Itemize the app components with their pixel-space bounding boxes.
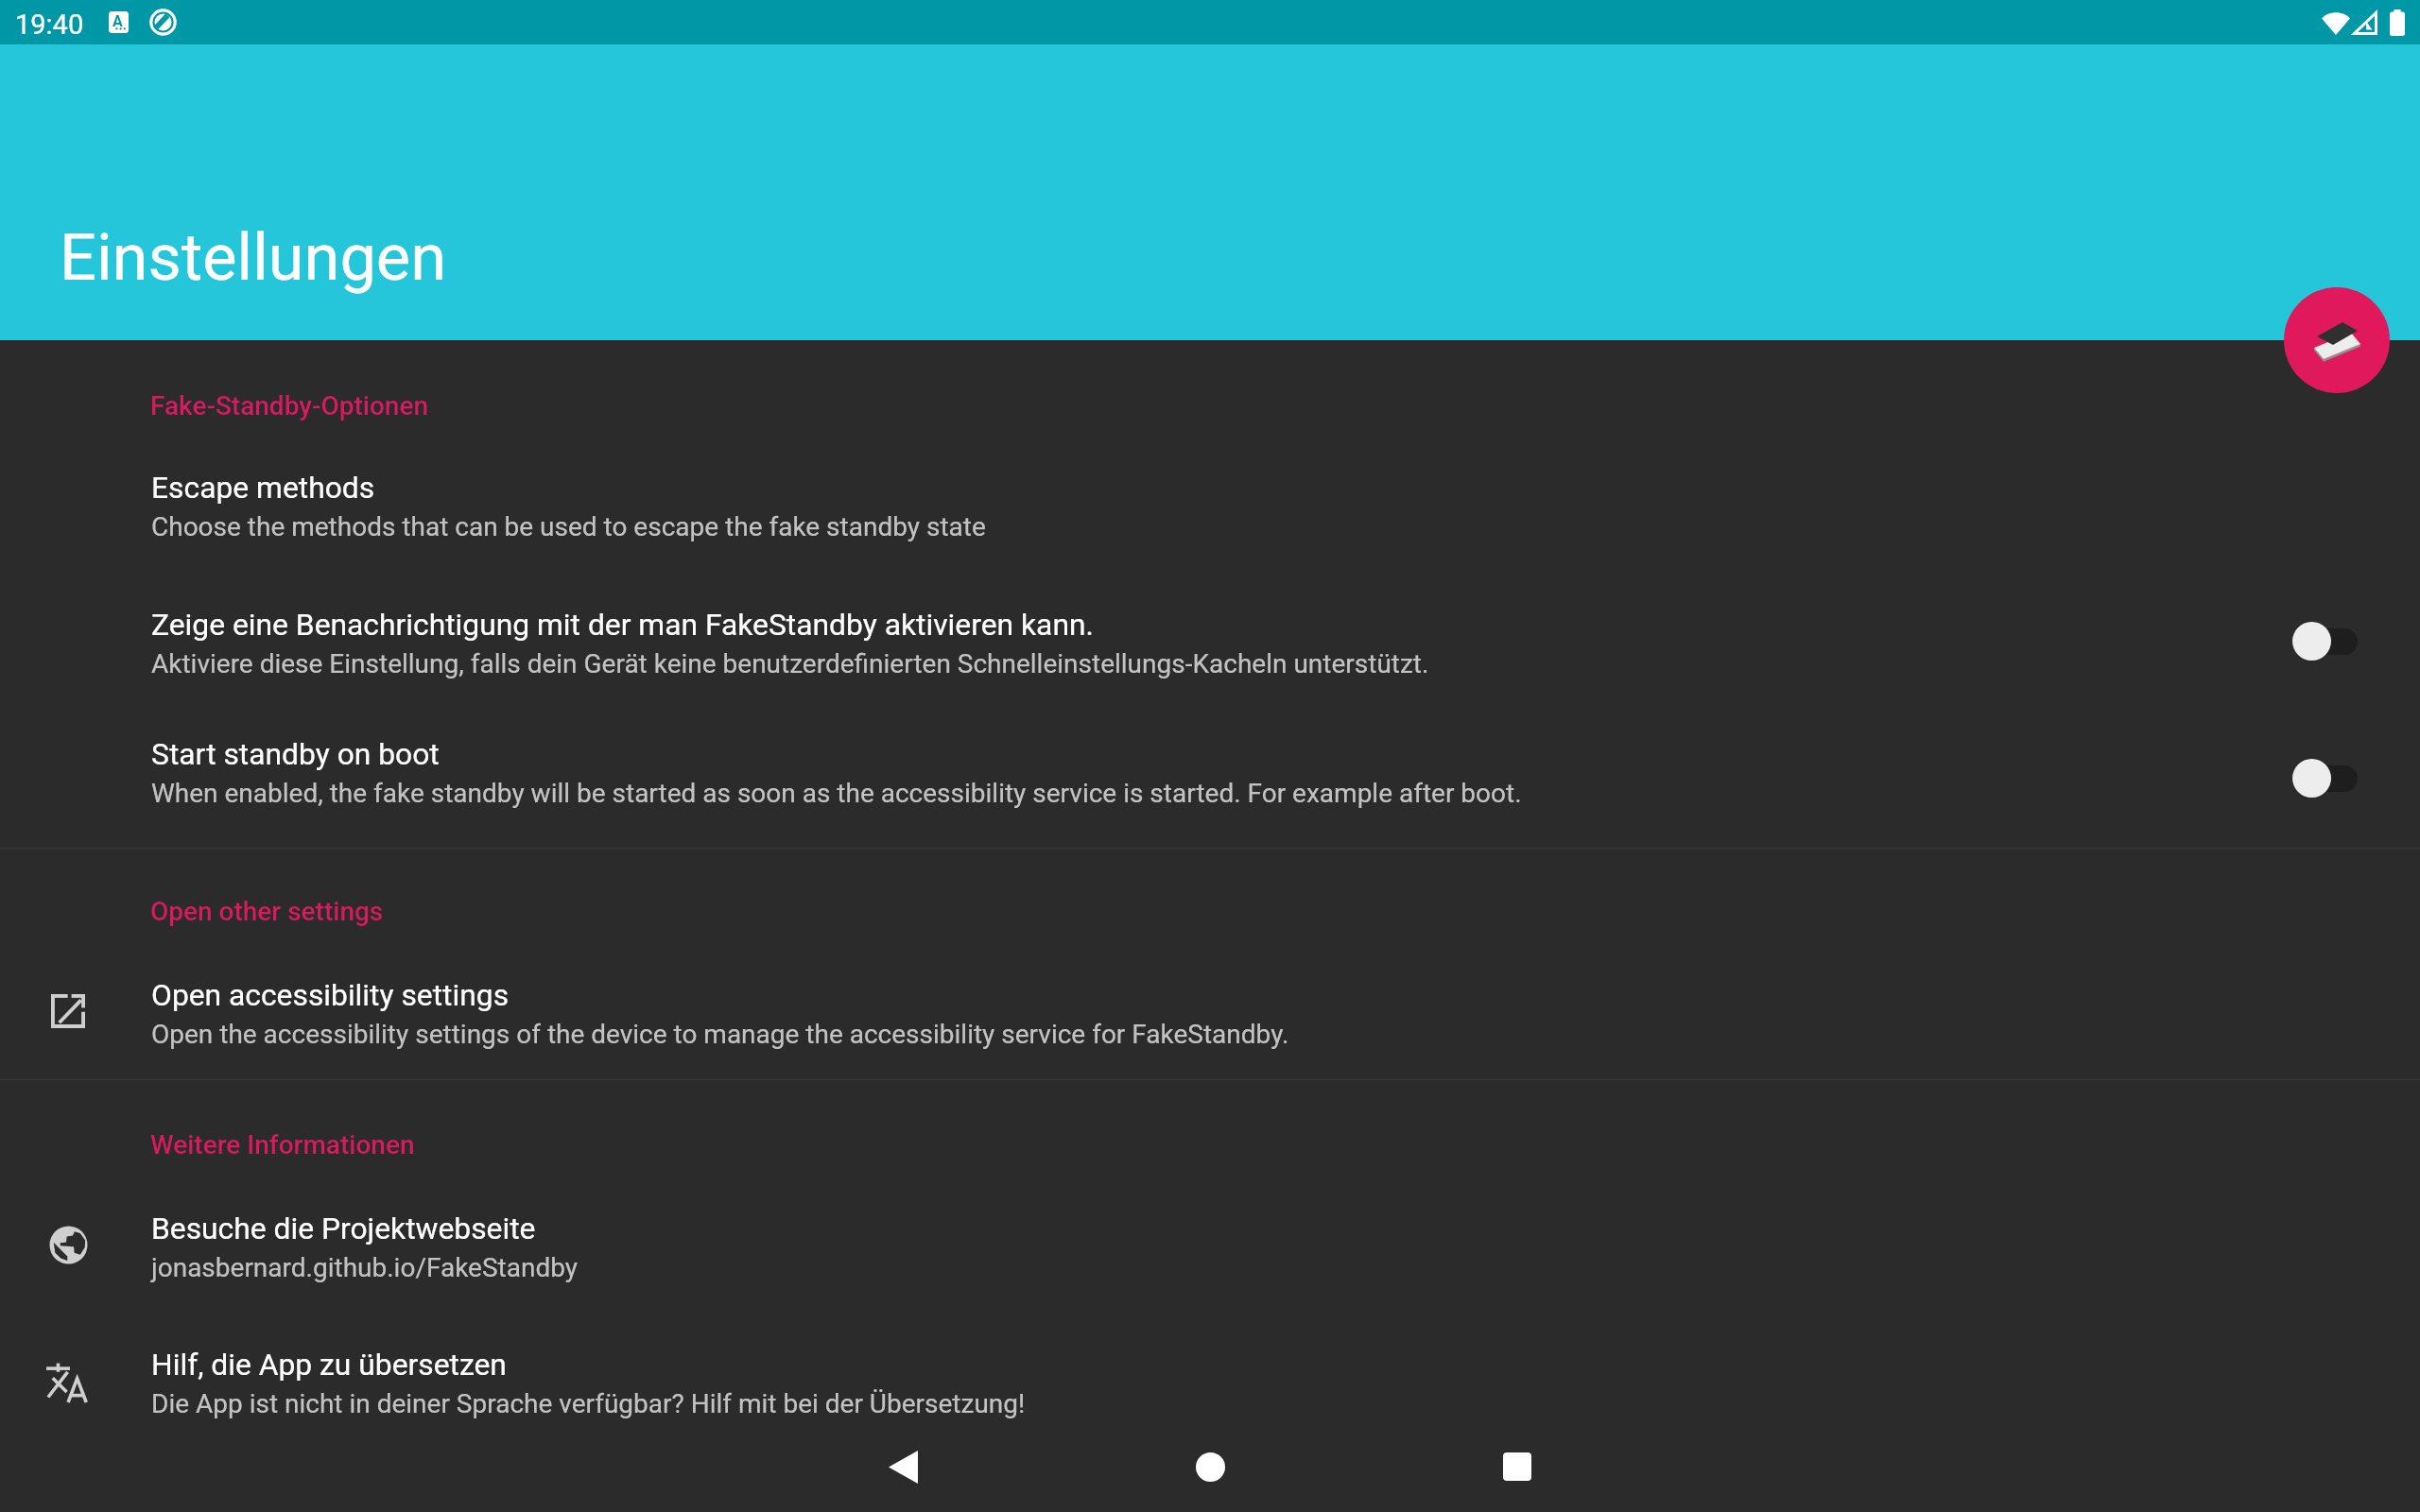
staticText: Die App ist nicht in deiner Sprache verf… [151,1388,1026,1419]
button[interactable]: Toggle setting [2292,618,2364,663]
staticText: Hilf, die App zu übersetzen [151,1347,507,1382]
button[interactable]: Back [857,1421,948,1512]
button[interactable]: Activate fake standby [2284,287,2390,393]
button[interactable]: Escape methods [0,438,2420,548]
staticText: Choose the methods that can be used to e… [151,511,986,542]
button[interactable]: Open accessibility settings [0,944,2420,1055]
button[interactable]: Recent apps [1472,1421,1563,1512]
button[interactable]: Hilf, die App zu übersetzen [0,1309,2420,1417]
staticText: Fake-Standby-Optionen [150,390,428,421]
staticText: When enabled, the fake standby will be s… [151,778,1522,809]
staticText: Zeige eine Benachrichtigung mit der man … [151,607,1094,642]
staticText: Escape methods [151,470,375,505]
staticText: A [112,12,123,30]
staticText: Start standby on boot [151,736,440,771]
staticText: Weitere Informationen [150,1129,415,1160]
button[interactable]: Home [1165,1421,1255,1512]
button[interactable]: Besuche die Projektwebseite [0,1178,2420,1289]
staticText: Open other settings [150,896,384,927]
button[interactable]: Zeige eine Benachrichtigung mit der man … [0,579,2420,690]
staticText: Einstellungen [60,219,447,295]
staticText: Besuche die Projektwebseite [151,1211,536,1246]
button[interactable]: Start standby on boot [0,709,2420,819]
staticText: Aktiviere diese Einstellung, falls dein … [151,648,1429,679]
staticText: jonasbernard.github.io/FakeStandby [151,1252,579,1283]
staticText: Open accessibility settings [151,977,510,1012]
button[interactable]: Toggle setting [2292,755,2364,800]
staticText: Open the accessibility settings of the d… [151,1019,1289,1050]
staticText: 19:40 [15,9,84,41]
